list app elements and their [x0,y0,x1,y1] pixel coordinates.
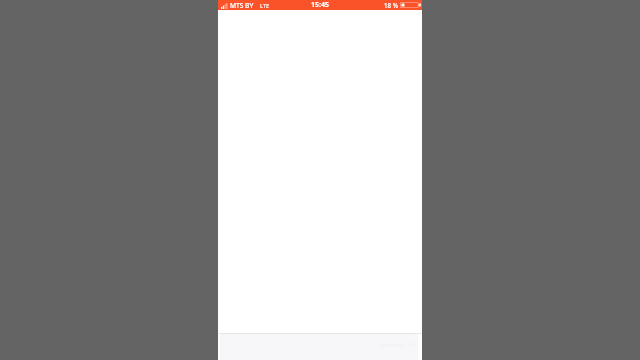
button[interactable]: Battery 18 percent [384,1,421,9]
staticText: LTE [260,2,270,10]
staticText: 18 % [384,1,398,9]
staticText: MTS BY [230,1,254,10]
button[interactable]: Mobile network status [221,1,270,10]
staticText: 15:45 [311,0,329,10]
